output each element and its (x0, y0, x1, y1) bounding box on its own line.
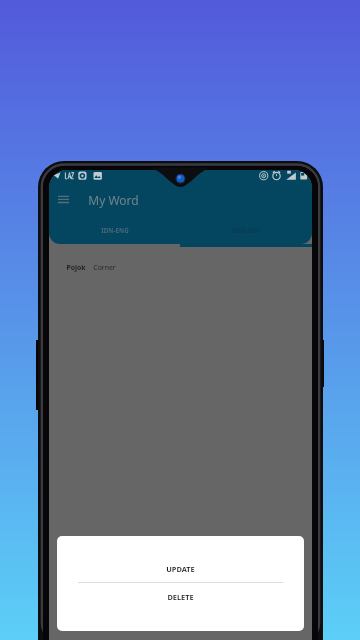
button[interactable]: ENG-IDN (180, 220, 312, 239)
button[interactable]: Pojok (49, 256, 312, 278)
button[interactable]: UPDATE (57, 536, 304, 583)
staticText: My Word (88, 192, 139, 208)
button[interactable]: DELETE (57, 584, 304, 631)
staticText: DELETE (167, 592, 194, 602)
button[interactable]: IDN-ENG (49, 220, 180, 239)
staticText: UPDATE (166, 564, 195, 574)
staticText: IDN-ENG (101, 226, 129, 234)
staticText: Pojok (66, 263, 86, 272)
staticText: ENG-IDN (232, 226, 260, 234)
button[interactable]: Open navigation drawer (52, 189, 74, 211)
staticText: Corner (93, 263, 116, 272)
